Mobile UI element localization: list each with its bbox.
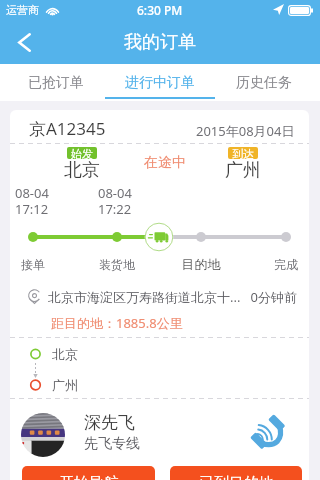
staticText: 我的订单 xyxy=(124,31,196,54)
staticText: 完成 xyxy=(226,257,309,272)
staticText: 接单 xyxy=(10,257,93,272)
staticText: 深先飞 xyxy=(84,412,135,433)
staticText: 装货地 xyxy=(57,257,177,272)
staticText: 北京 xyxy=(22,159,142,182)
staticText: 运营商 xyxy=(6,3,39,17)
staticText: 在途中 xyxy=(105,154,225,172)
staticText: 目的地 xyxy=(141,256,261,272)
staticText: 开始导航 xyxy=(59,474,119,480)
staticText: 历史任务 xyxy=(236,74,292,92)
button[interactable]: Back xyxy=(0,20,48,64)
button[interactable]: Call driver xyxy=(246,410,290,454)
button[interactable]: 开始导航 xyxy=(22,466,155,480)
button[interactable]: 已到目的地 xyxy=(170,466,302,480)
staticText: 京A12345 xyxy=(29,117,106,140)
staticText: 北京市海淀区万寿路街道北京十... 0分钟前 xyxy=(48,288,298,306)
button[interactable]: 已抢订单 xyxy=(0,64,105,101)
staticText: 到达 xyxy=(232,147,254,159)
staticText: 广州 xyxy=(183,159,303,182)
staticText: 广州 xyxy=(52,377,78,393)
staticText: 2015年08月04日 xyxy=(196,122,295,140)
staticText: 6:30 PM xyxy=(137,2,183,18)
staticText: 始发 xyxy=(71,147,93,159)
staticText: 先飞专线 xyxy=(84,435,140,453)
staticText: 进行中订单 xyxy=(125,74,195,92)
staticText: 08-04 17:22 xyxy=(98,184,132,217)
staticText: 北京 xyxy=(52,346,78,362)
staticText: 距目的地：1885.8公里 xyxy=(51,314,183,332)
button[interactable]: 京A12345 xyxy=(10,110,309,480)
staticText: 已抢订单 xyxy=(28,74,84,92)
staticText: 已到目的地 xyxy=(199,474,274,480)
staticText: 08-04 17:12 xyxy=(15,184,49,217)
button[interactable]: 进行中订单 xyxy=(105,64,215,101)
button[interactable]: 历史任务 xyxy=(215,64,320,101)
